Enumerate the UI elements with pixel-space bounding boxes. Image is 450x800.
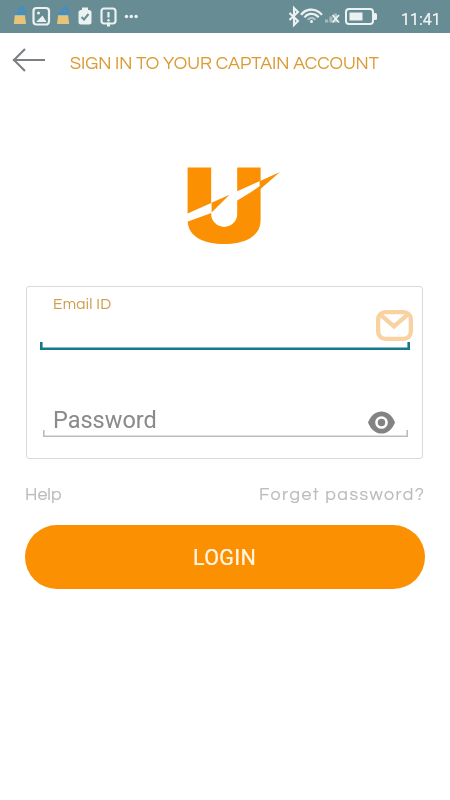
staticText: LOGIN bbox=[193, 545, 257, 570]
staticText: Forget password? bbox=[259, 485, 426, 503]
button[interactable]: Forget password? bbox=[259, 485, 426, 503]
staticText: Help bbox=[25, 485, 62, 503]
staticText: 11:41 bbox=[401, 10, 441, 29]
staticText: Password bbox=[53, 406, 157, 434]
staticText: Email ID bbox=[53, 296, 112, 312]
button[interactable]: Email bbox=[370, 301, 419, 350]
button[interactable]: LOGIN bbox=[25, 525, 425, 589]
button[interactable]: Show password bbox=[359, 400, 404, 445]
staticText: SIGN IN TO YOUR CAPTAIN ACCOUNT bbox=[70, 54, 379, 72]
button[interactable]: Help bbox=[25, 485, 62, 503]
button[interactable]: Back bbox=[5, 36, 53, 84]
